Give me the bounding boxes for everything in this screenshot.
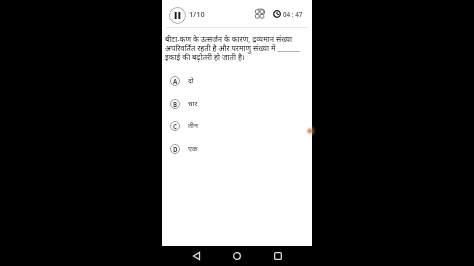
staticText: A [173, 77, 178, 85]
button[interactable]: Time left [273, 10, 281, 18]
staticText: C [173, 122, 177, 130]
button[interactable]: Pause [169, 7, 186, 24]
button[interactable]: Back [188, 248, 204, 264]
staticText: तीन [188, 121, 198, 131]
button[interactable]: C [165, 115, 285, 137]
button[interactable]: Question palette [255, 9, 265, 19]
button[interactable]: Next question [300, 121, 320, 141]
staticText: 1/10 [189, 9, 205, 19]
staticText: B [173, 100, 178, 108]
staticText: दो [188, 76, 194, 86]
staticText: एक [188, 144, 198, 154]
button[interactable]: B [165, 93, 285, 115]
button[interactable]: A [165, 70, 285, 92]
staticText: बीटा-कण के उत्सर्जन के कारण, द्रव्यमान स… [165, 34, 305, 62]
button[interactable]: Home [229, 248, 245, 264]
staticText: D [173, 145, 178, 153]
staticText: 04 : 47 [283, 10, 303, 19]
button[interactable]: D [165, 138, 285, 160]
staticText: चार [188, 99, 198, 109]
button[interactable]: Recent apps [270, 248, 286, 264]
